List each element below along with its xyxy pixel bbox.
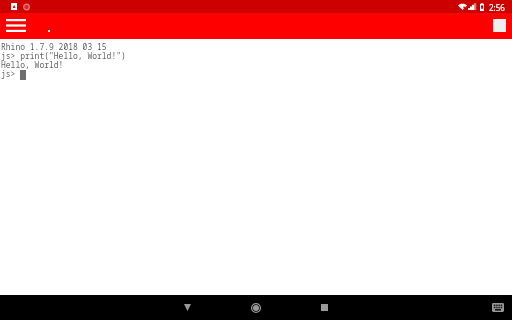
button[interactable]: Home (234, 295, 279, 320)
staticText: Hello, World! (1, 61, 64, 70)
button[interactable]: Back (165, 295, 210, 320)
staticText: 2:56 (489, 2, 505, 13)
staticText: Rhino 1.7.9 2018 03 15 (1, 43, 107, 52)
button[interactable]: Recent apps (302, 295, 347, 320)
button[interactable]: Console output (0, 39, 512, 295)
staticText: js> print("Hello, World!") (1, 52, 126, 61)
button[interactable]: Change keyboard (490, 295, 512, 320)
button[interactable]: Open navigation drawer (0, 13, 31, 39)
staticText: js> (1, 70, 16, 79)
